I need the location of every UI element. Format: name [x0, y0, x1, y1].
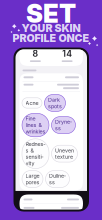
button[interactable]: Fine lines & wrinkles	[22, 113, 49, 137]
button[interactable]: Dark spots	[44, 94, 65, 111]
staticText: 8	[32, 48, 38, 59]
staticText: 14	[62, 48, 72, 59]
staticText: YOUR SKIN	[21, 21, 80, 34]
staticText: SET	[26, 0, 76, 29]
staticText: Large pores	[25, 173, 39, 185]
staticText: Dark spots	[48, 96, 62, 109]
button[interactable]: Dryness	[51, 117, 75, 133]
staticText: PROFILE ONCE	[12, 31, 89, 44]
button[interactable]: Large pores	[22, 171, 43, 187]
staticText: Fine lines & wrinkles	[25, 115, 45, 135]
staticText: Dryness	[55, 119, 72, 131]
button[interactable]: Uneven texture	[51, 145, 77, 162]
button[interactable]: Dullness	[45, 171, 69, 187]
staticText: Acne	[25, 100, 38, 106]
staticText: 9:41	[20, 34, 30, 40]
button[interactable]: Acne	[22, 98, 42, 108]
staticText: Uneven texture	[55, 147, 74, 160]
staticText: Redness & sensitivity	[25, 141, 45, 167]
staticText: Dullness	[49, 173, 66, 185]
button[interactable]: Redness & sensitivity	[22, 139, 49, 169]
